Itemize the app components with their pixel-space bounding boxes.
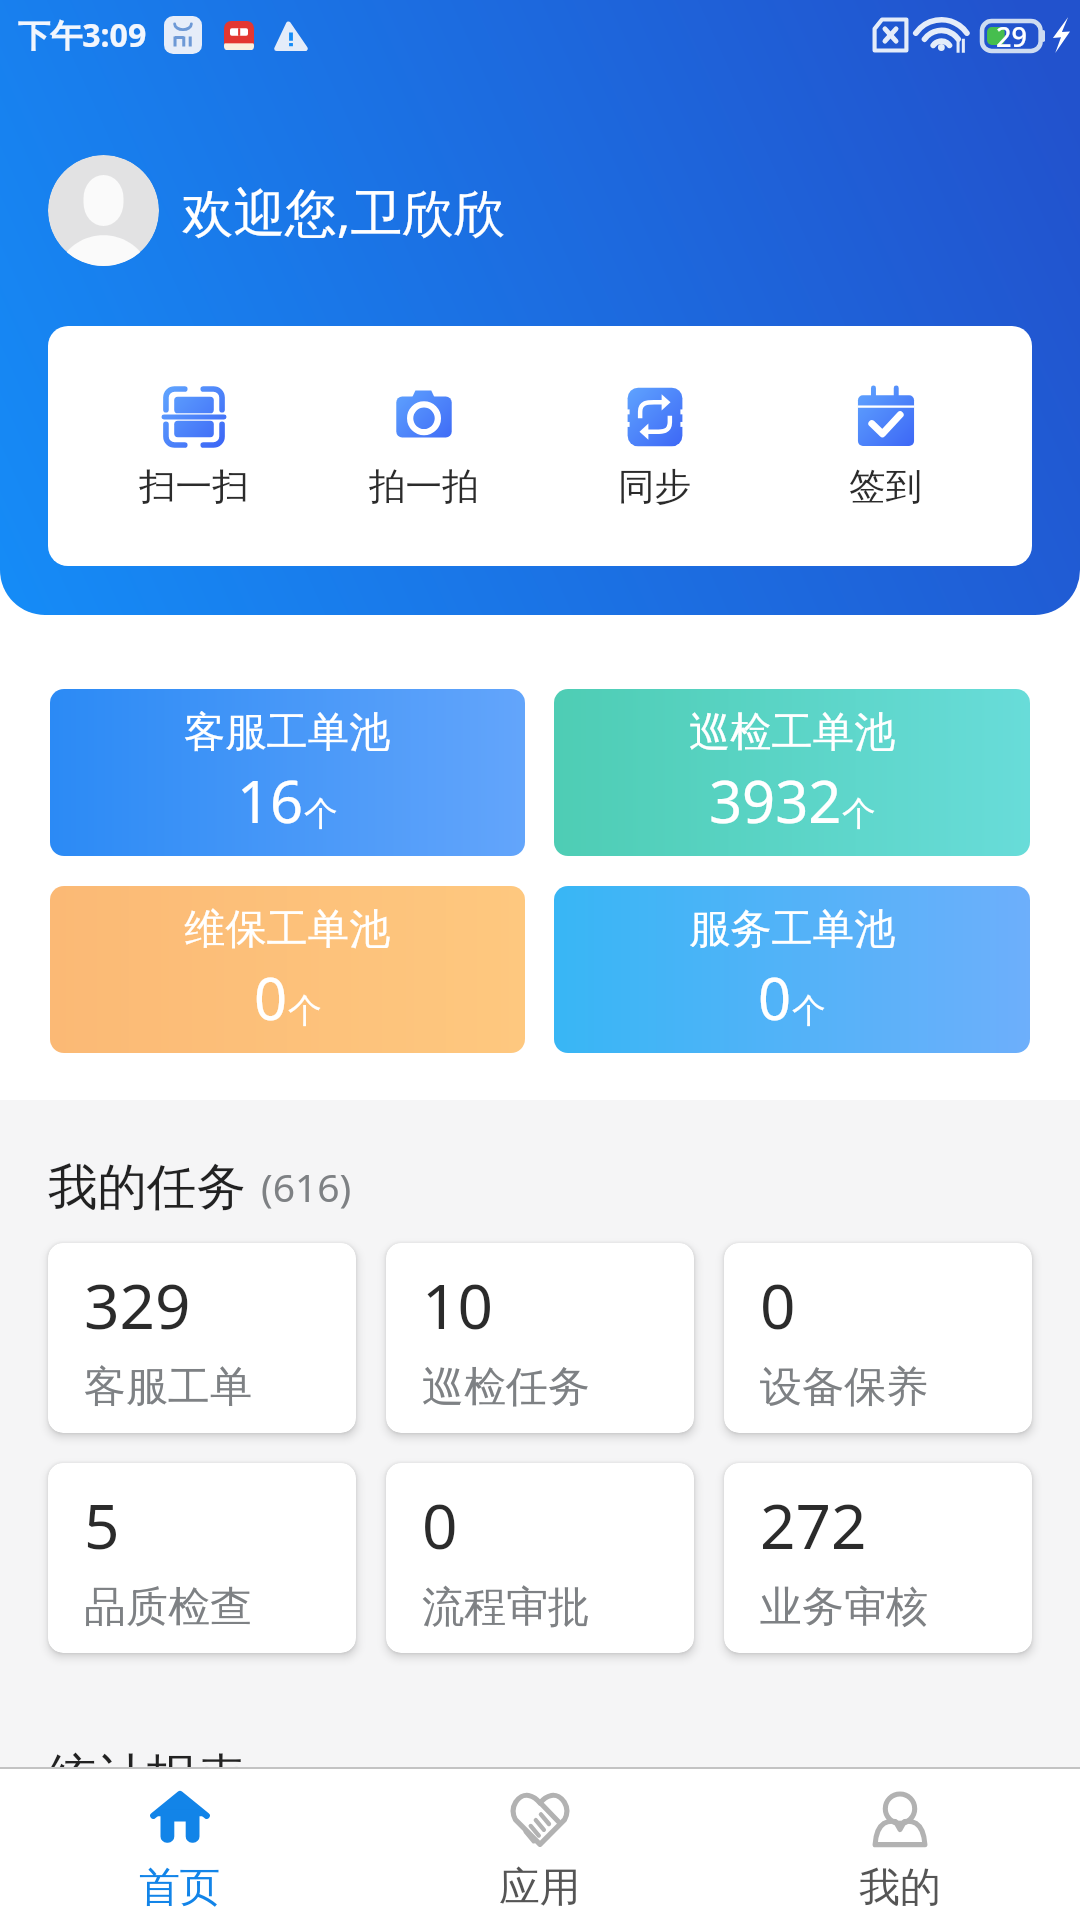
button[interactable]: 0 xyxy=(724,1243,1032,1433)
staticText: 0 xyxy=(758,958,792,1037)
staticText: 29 xyxy=(996,18,1027,55)
staticText: 业务审核 xyxy=(760,1581,928,1634)
button[interactable]: 维保工单池 xyxy=(50,886,525,1053)
staticText: 329 xyxy=(84,1263,191,1348)
button[interactable]: 欢迎您,卫欣欣 xyxy=(48,134,483,287)
staticText: 下午3:09 xyxy=(18,13,147,57)
staticText: 个 xyxy=(304,793,338,835)
other: No SIM xyxy=(872,17,909,53)
staticText: 扫一扫 xyxy=(139,464,249,510)
button[interactable]: 应用 xyxy=(360,1769,720,1920)
staticText: 流程审批 xyxy=(422,1581,590,1634)
staticText: 品质检查 xyxy=(84,1581,252,1634)
staticText: 首页 xyxy=(139,1862,221,1913)
button[interactable]: 同步 xyxy=(539,326,770,566)
staticText: 5 xyxy=(84,1483,120,1568)
staticText: 0 xyxy=(254,958,288,1037)
staticText: 拍一拍 xyxy=(369,464,479,510)
staticText: 维保工单池 xyxy=(184,903,391,955)
button[interactable]: 10 xyxy=(386,1243,694,1433)
staticText: 3932 xyxy=(709,761,842,840)
staticText: 服务工单池 xyxy=(689,903,896,955)
staticText: 统计报表 xyxy=(48,1746,246,1808)
staticText: 我的任务 xyxy=(48,1156,246,1218)
staticText: 272 xyxy=(760,1483,867,1568)
staticText: 巡检任务 xyxy=(422,1361,590,1414)
button[interactable]: 首页 xyxy=(0,1769,360,1920)
staticText: 客服工单池 xyxy=(184,706,391,758)
button[interactable]: 签到 xyxy=(770,326,1001,566)
staticText: 同步 xyxy=(618,464,692,510)
button[interactable]: 0 xyxy=(386,1463,694,1653)
staticText: (616) xyxy=(261,1160,352,1213)
staticText: 应用 xyxy=(499,1862,581,1913)
button[interactable]: 272 xyxy=(724,1463,1032,1653)
button[interactable]: 5 xyxy=(48,1463,356,1653)
staticText: 客服工单 xyxy=(84,1361,252,1414)
staticText: 我的 xyxy=(859,1862,941,1913)
button[interactable]: 服务工单池 xyxy=(554,886,1030,1053)
button[interactable]: 我的 xyxy=(720,1769,1080,1920)
staticText: 个 xyxy=(288,990,322,1032)
staticText: 签到 xyxy=(849,464,923,510)
staticText: 巡检工单池 xyxy=(689,706,896,758)
staticText: 设备保养 xyxy=(760,1361,928,1414)
button[interactable]: 客服工单池 xyxy=(50,689,525,856)
button[interactable]: 扫一扫 xyxy=(79,326,309,566)
staticText: 个 xyxy=(842,793,876,835)
staticText: 10 xyxy=(422,1263,494,1348)
button[interactable]: 329 xyxy=(48,1243,356,1433)
staticText: 个 xyxy=(792,990,826,1032)
staticText: 欢迎您,卫欣欣 xyxy=(182,176,506,246)
staticText: 0 xyxy=(422,1483,458,1568)
staticText: 0 xyxy=(760,1263,796,1348)
button[interactable]: 拍一拍 xyxy=(309,326,539,566)
button[interactable]: 巡检工单池 xyxy=(554,689,1030,856)
staticText: 16 xyxy=(237,761,304,840)
